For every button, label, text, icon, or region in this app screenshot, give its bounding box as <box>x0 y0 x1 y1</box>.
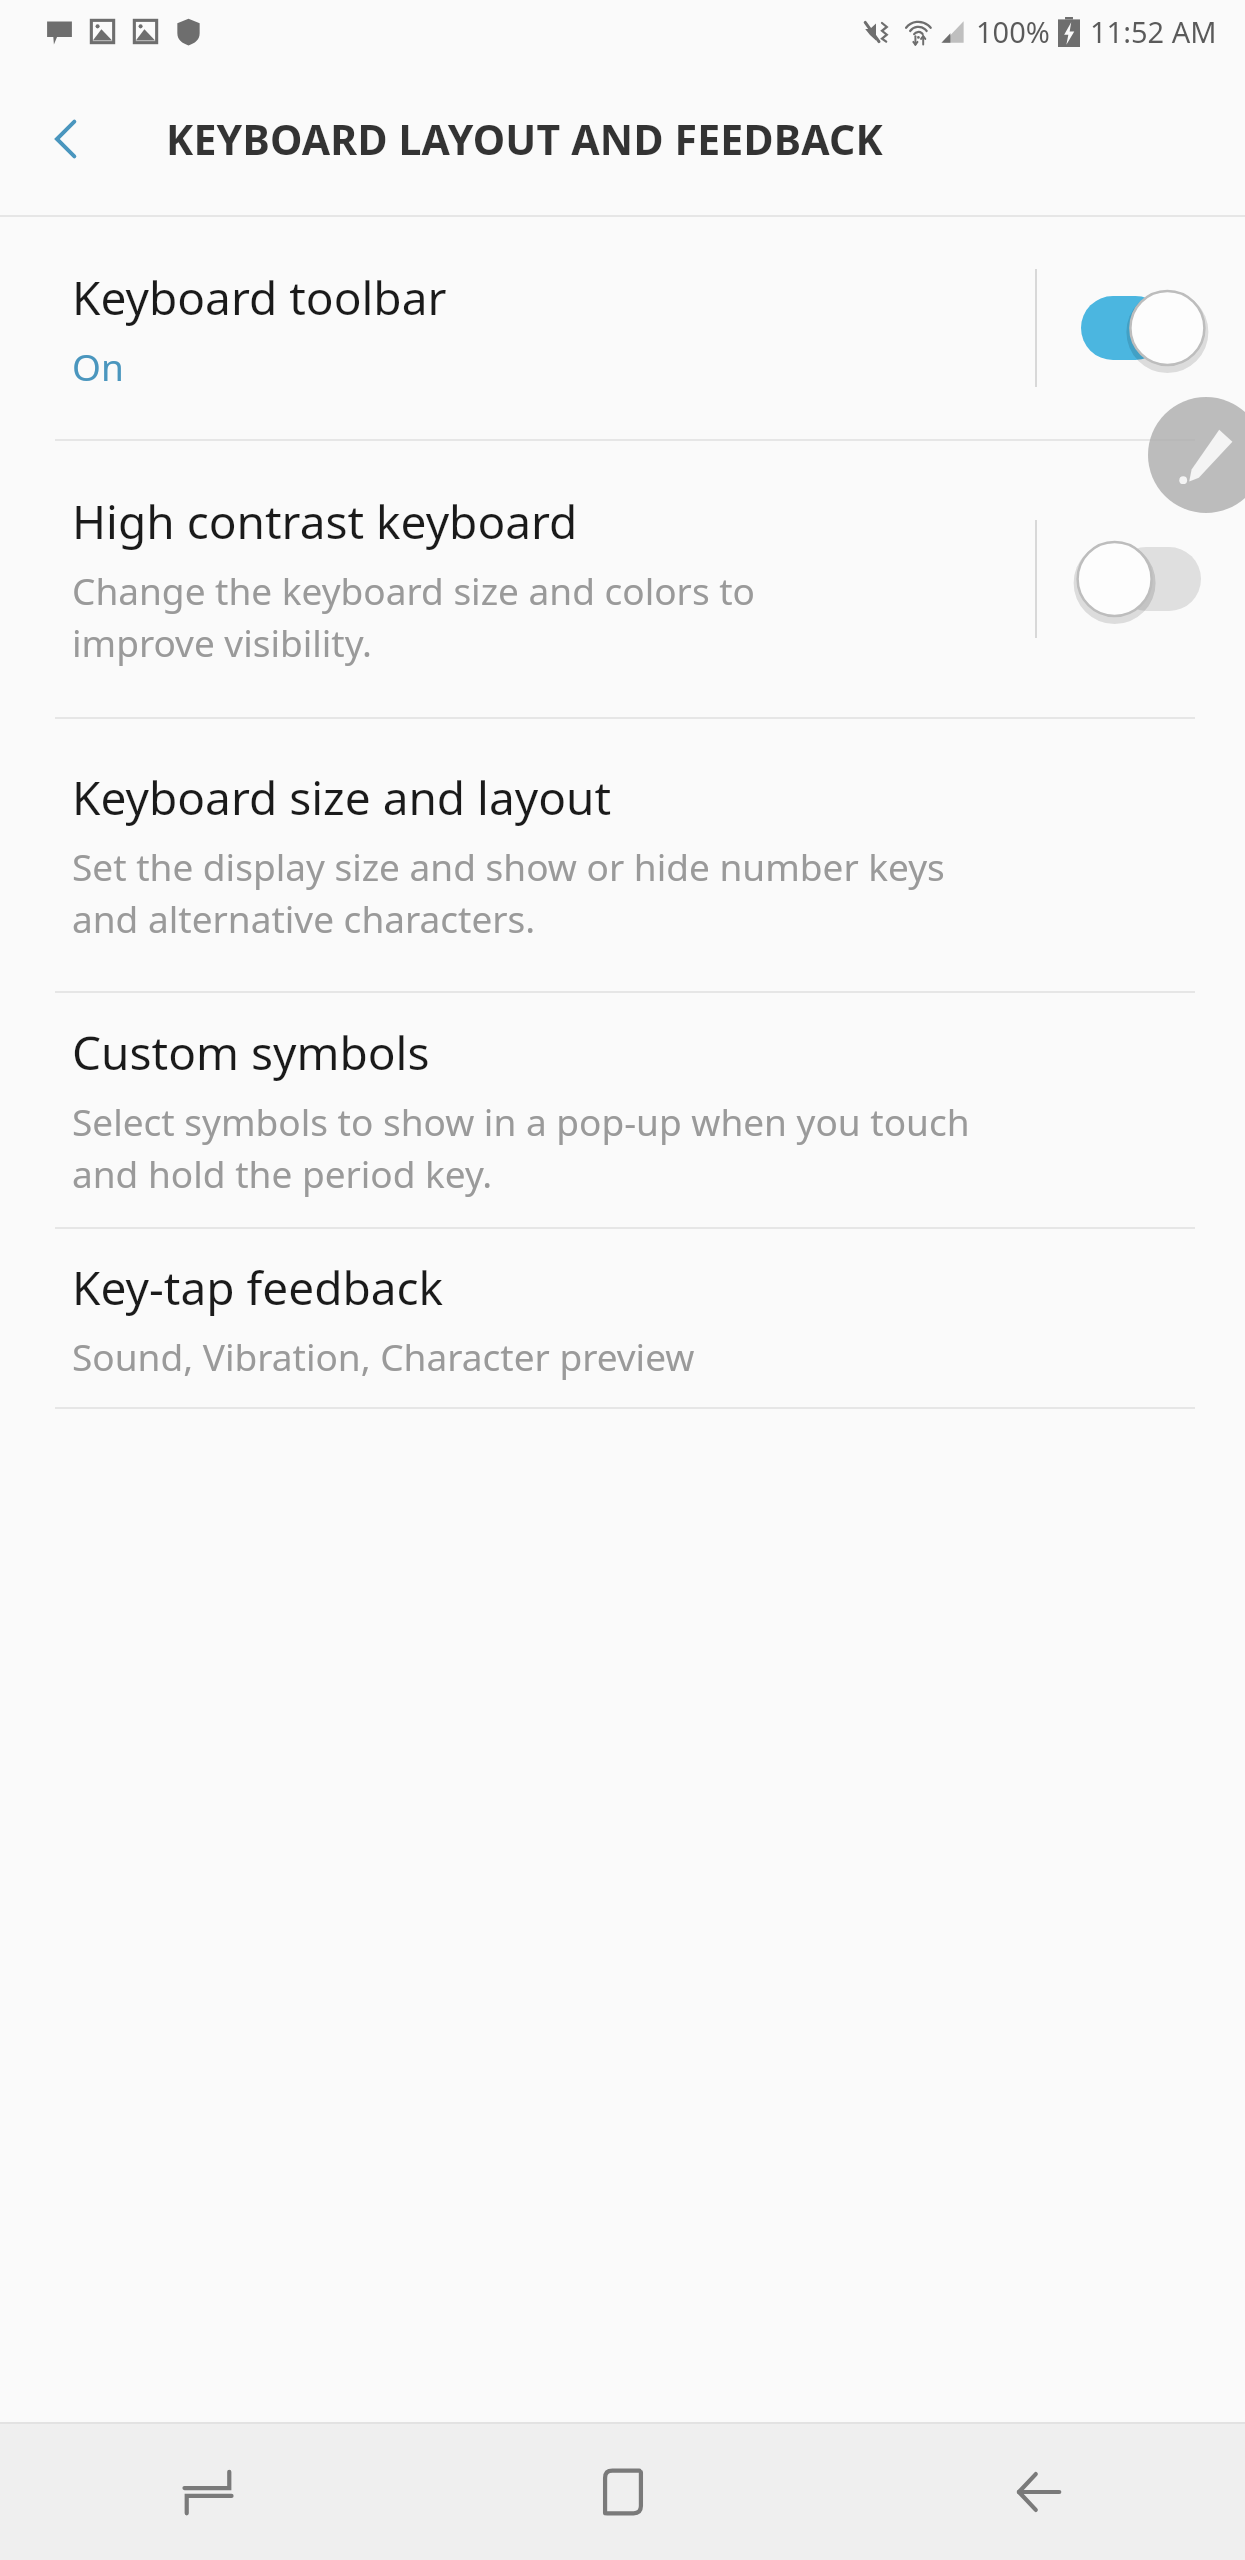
button[interactable]: Custom symbols <box>0 993 1245 1227</box>
staticText: On <box>72 341 124 391</box>
button[interactable]: Key-tap feedback <box>0 1229 1245 1407</box>
staticText: Change the keyboard size and colors to i… <box>72 565 755 668</box>
staticText: Set the display size and show or hide nu… <box>72 841 945 944</box>
staticText: Keyboard size and layout <box>72 766 612 829</box>
button[interactable]: Home <box>415 2424 830 2560</box>
staticText: 100% <box>976 12 1050 51</box>
staticText: Sound, Vibration, Character preview <box>72 1331 695 1381</box>
button[interactable]: Recent apps <box>0 2424 415 2560</box>
staticText: Key-tap feedback <box>72 1256 444 1319</box>
button[interactable]: Turn off <box>1037 217 1245 439</box>
button[interactable]: Back <box>830 2424 1245 2560</box>
staticText: Custom symbols <box>72 1021 430 1084</box>
staticText: KEYBOARD LAYOUT AND FEEDBACK <box>166 111 883 167</box>
staticText: 11:52 AM <box>1090 12 1217 51</box>
staticText: High contrast keyboard <box>72 490 578 553</box>
button[interactable]: Edit <box>1148 397 1245 513</box>
button[interactable]: Back <box>34 106 100 172</box>
button[interactable]: Keyboard size and layout <box>0 719 1245 991</box>
button[interactable]: Keyboard toolbar <box>0 217 1245 439</box>
staticText: Keyboard toolbar <box>72 266 447 329</box>
button[interactable]: High contrast keyboard <box>0 441 1245 717</box>
button[interactable]: Turn on <box>1037 441 1245 717</box>
staticText: Select symbols to show in a pop-up when … <box>72 1096 970 1199</box>
